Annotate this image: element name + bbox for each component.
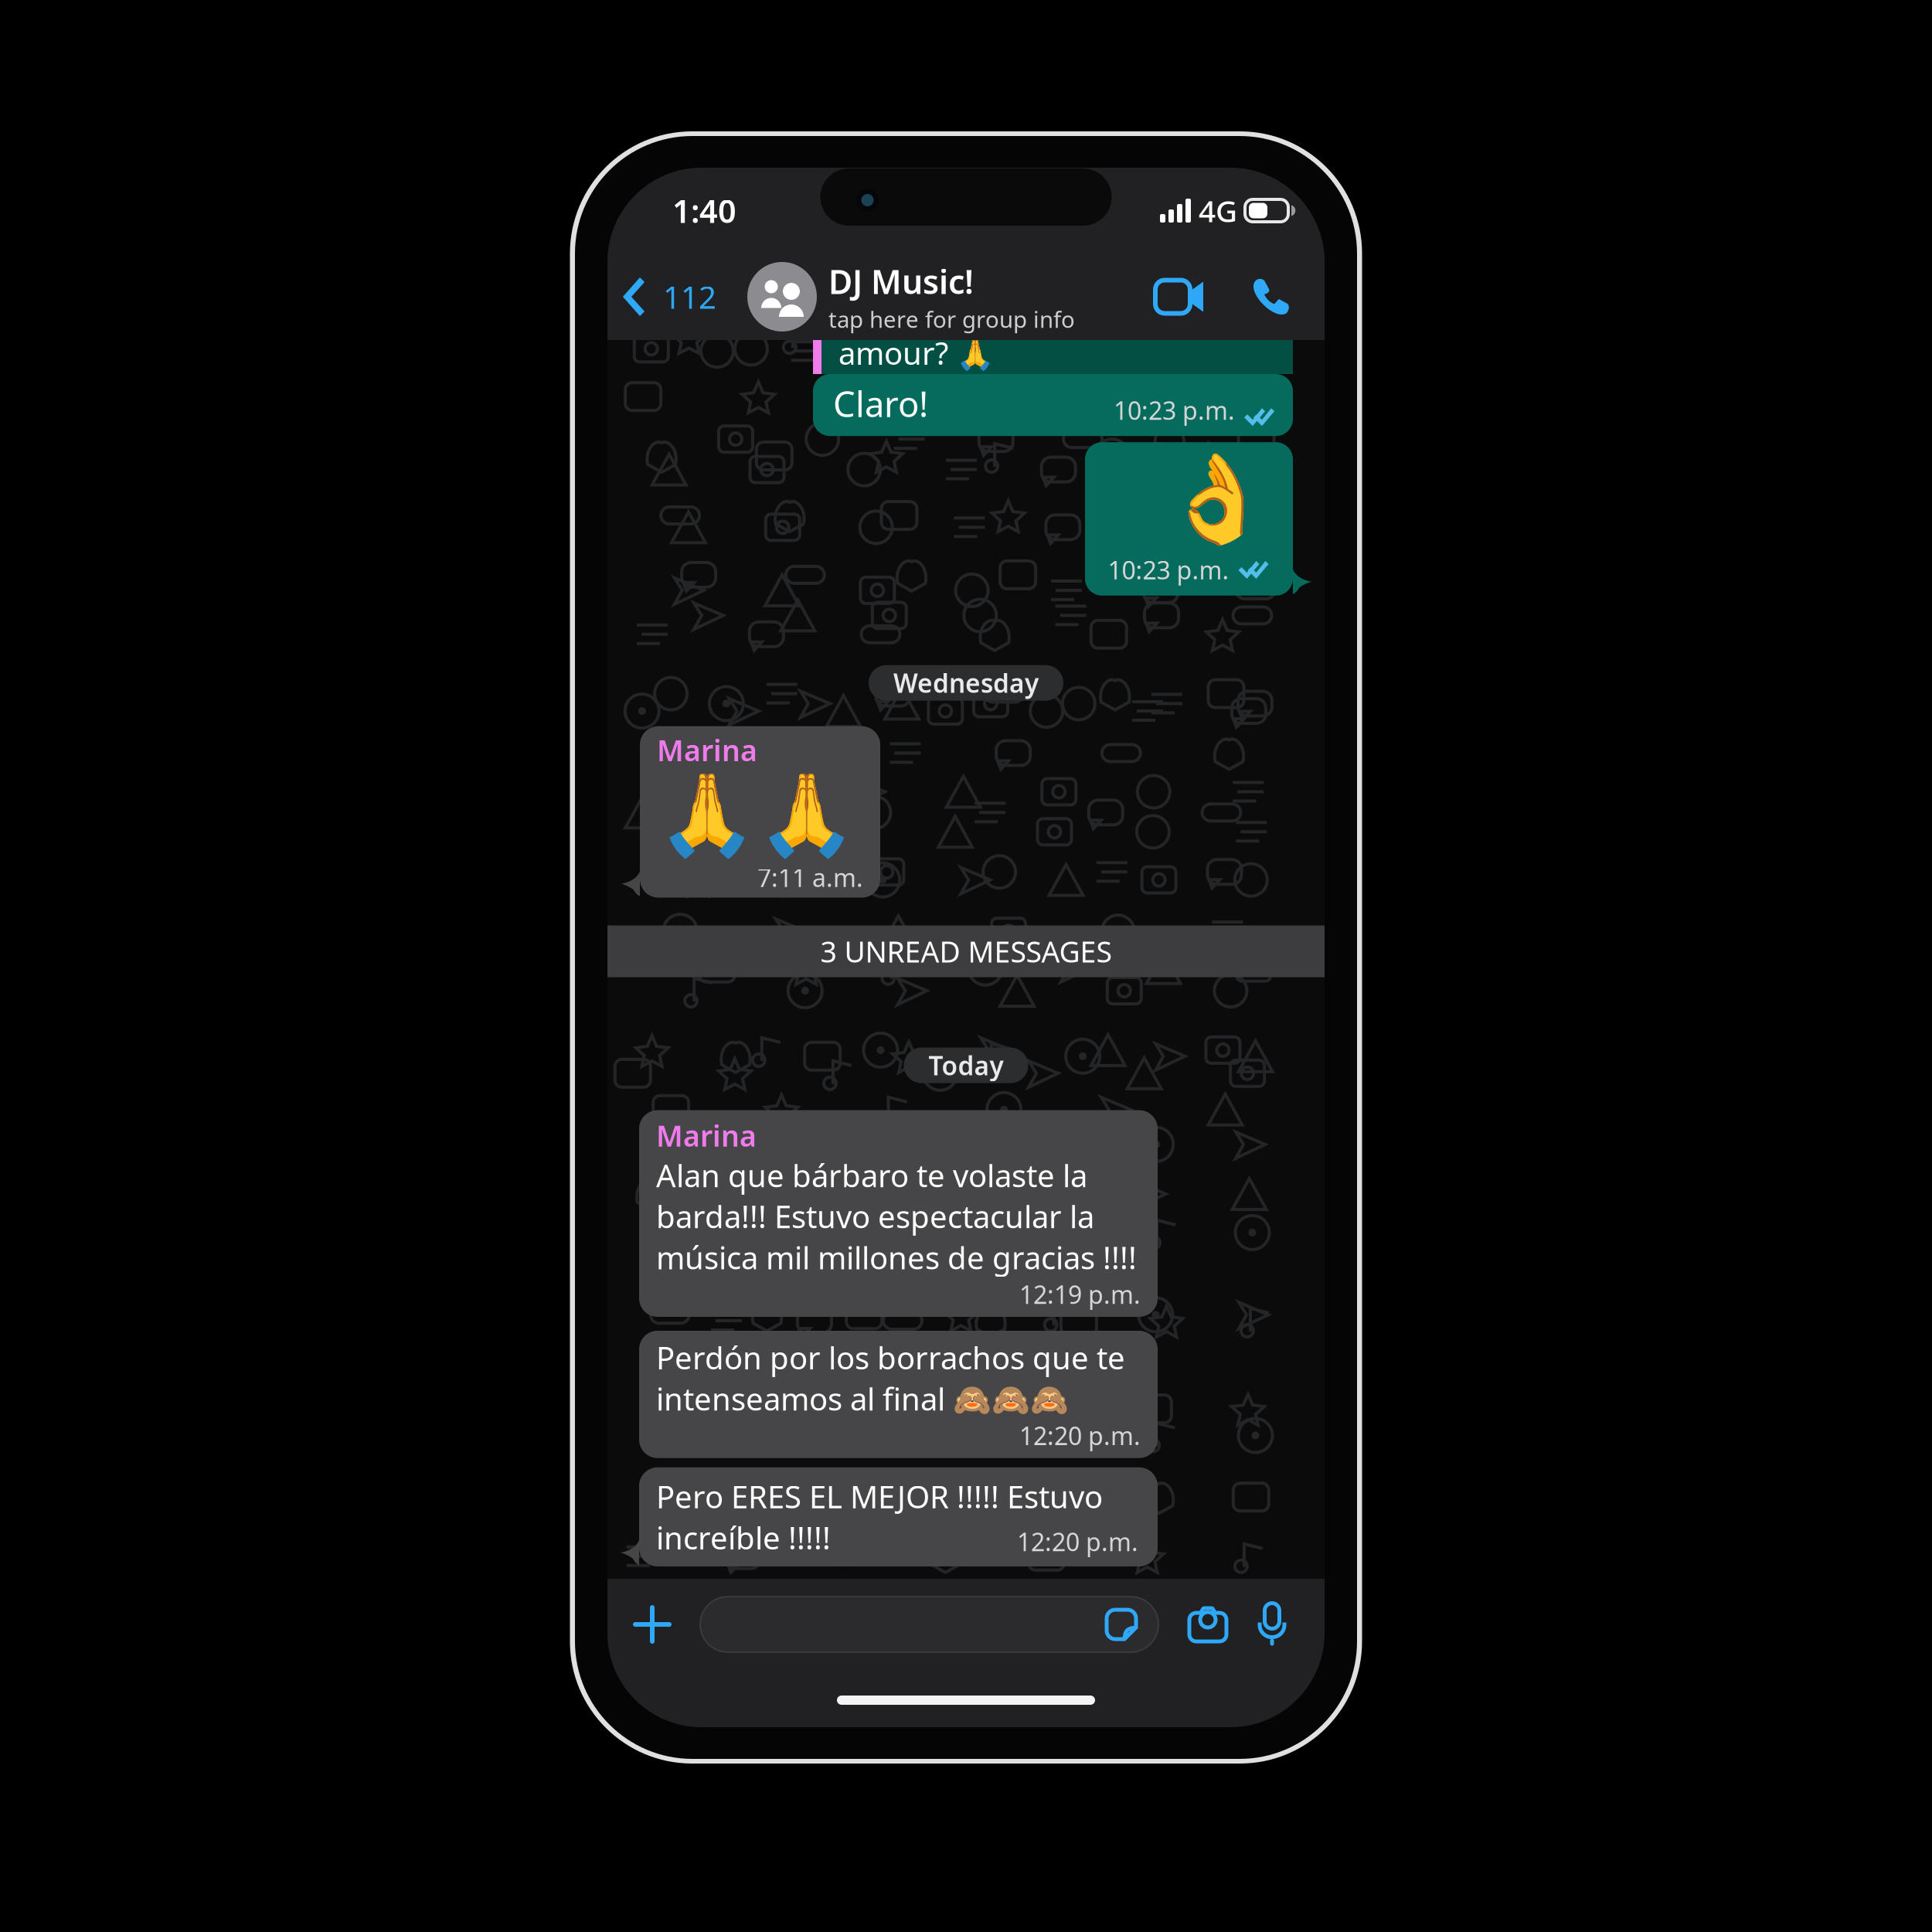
- staticText: tap here for group info: [828, 304, 1075, 334]
- staticText: Claro!: [833, 380, 928, 427]
- staticText: 4G: [1199, 191, 1237, 230]
- staticText: Marina: [657, 731, 757, 769]
- staticText: 7:11 a.m.: [757, 861, 863, 894]
- button[interactable]: DJ Music!: [747, 253, 1075, 340]
- staticText: 10:23 p.m.: [1108, 553, 1229, 586]
- button[interactable]: 112: [607, 253, 726, 340]
- staticText: Alan que bárbaro te volaste la barda!!! …: [656, 1155, 1137, 1278]
- staticText: 3 UNREAD MESSAGES: [820, 932, 1112, 971]
- button[interactable]: Attach: [631, 1603, 674, 1646]
- staticText: 12:20 p.m.: [1019, 1419, 1141, 1452]
- staticText: 112: [663, 276, 716, 317]
- staticText: Marina: [656, 1116, 757, 1155]
- button[interactable]: Voice call: [1250, 277, 1289, 316]
- staticText: DJ Music!: [828, 259, 974, 303]
- staticText: 12:20 p.m.: [1017, 1525, 1138, 1558]
- staticText: 🙏🙏: [657, 769, 856, 861]
- button[interactable]: Voice message: [1257, 1603, 1287, 1646]
- staticText: Today: [929, 1048, 1003, 1082]
- staticText: 12:19 p.m.: [1019, 1278, 1141, 1311]
- staticText: Perdón por los borrachos que te intensea…: [656, 1337, 1125, 1419]
- staticText: Wednesday: [893, 666, 1039, 700]
- staticText: Pero ERES EL MEJOR !!!!! Estuvo increíbl…: [656, 1476, 1103, 1558]
- staticText: 10:23 p.m.: [1114, 394, 1235, 427]
- button[interactable]: Video call: [1155, 277, 1205, 316]
- button[interactable]: Stickers: [1104, 1607, 1138, 1641]
- staticText: amour? 🙏: [838, 332, 995, 373]
- staticText: 👌: [1163, 450, 1270, 549]
- button[interactable]: Camera: [1187, 1605, 1229, 1644]
- staticText: 1:40: [672, 189, 736, 232]
